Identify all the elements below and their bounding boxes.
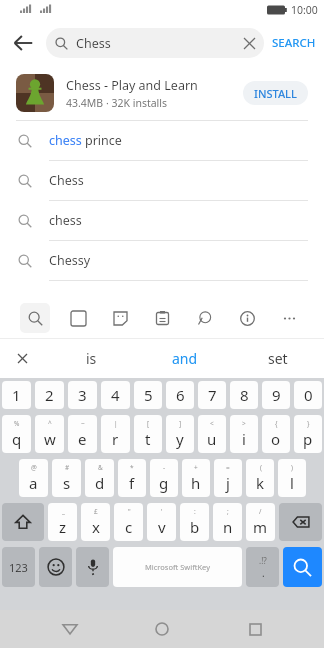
button[interactable]: 8 <box>230 381 258 409</box>
staticText: Chessy <box>49 252 91 269</box>
button[interactable]: ^ <box>35 415 64 453</box>
staticText: chess <box>49 212 82 229</box>
button[interactable]: chess prince <box>0 121 324 160</box>
staticText: Chess <box>49 172 84 189</box>
staticText: is <box>86 349 97 368</box>
button[interactable]: ~ <box>68 415 97 453</box>
staticText: * <box>130 463 134 472</box>
button[interactable]: / <box>246 503 275 541</box>
button[interactable]: @ <box>19 459 48 497</box>
button[interactable]: Search <box>20 303 50 333</box>
button[interactable]: & <box>85 459 114 497</box>
staticText: o <box>271 429 281 449</box>
button[interactable]: Chess <box>0 161 324 200</box>
staticText: { <box>275 419 278 428</box>
button[interactable]: Recents <box>232 610 278 648</box>
staticText: t <box>145 429 151 449</box>
button[interactable]: : <box>180 503 209 541</box>
button[interactable]: £ <box>81 503 110 541</box>
staticText: # <box>65 463 70 472</box>
button[interactable]: > <box>230 415 258 453</box>
button[interactable]: chess <box>0 201 324 240</box>
button[interactable]: Stickers <box>105 303 135 333</box>
button[interactable]: 123 <box>2 547 35 587</box>
button[interactable]: SEARCH <box>264 20 324 66</box>
button[interactable]: 2 <box>35 381 64 409</box>
staticText: _ <box>62 507 65 516</box>
button[interactable]: 4 <box>101 381 130 409</box>
staticText: ] <box>179 419 182 428</box>
button[interactable]: < <box>198 415 226 453</box>
button[interactable]: Chess <box>46 28 264 58</box>
button[interactable]: Chessy <box>0 241 324 280</box>
button[interactable]: Info <box>232 303 262 333</box>
button[interactable]: ' <box>147 503 176 541</box>
button[interactable]: ) <box>278 459 306 497</box>
staticText: | <box>114 419 118 428</box>
staticText: > <box>242 419 246 428</box>
button[interactable]: ] <box>166 415 194 453</box>
staticText: g <box>159 473 169 493</box>
button[interactable]: - <box>150 459 178 497</box>
button[interactable]: Clipboard <box>147 303 177 333</box>
button[interactable]: } <box>294 415 322 453</box>
button[interactable]: * <box>118 459 146 497</box>
staticText: q <box>12 429 22 449</box>
button[interactable]: 1 <box>2 381 31 409</box>
staticText: 7 <box>208 385 217 405</box>
button[interactable]: Microsoft SwiftKey <box>113 547 242 587</box>
button[interactable]: .!? <box>246 547 279 587</box>
staticText: £ <box>94 507 98 516</box>
button[interactable]: # <box>52 459 81 497</box>
button[interactable]: is <box>44 339 138 378</box>
staticText: y <box>176 429 184 449</box>
button[interactable]: 3 <box>68 381 97 409</box>
button[interactable]: Home <box>139 610 185 648</box>
staticText: Chess <box>76 35 236 52</box>
staticText: set <box>268 349 288 368</box>
button[interactable]: 7 <box>198 381 226 409</box>
button[interactable]: ( <box>246 459 274 497</box>
button[interactable]: Emoji <box>39 547 72 587</box>
button[interactable]: Clear <box>236 30 262 56</box>
button[interactable]: 5 <box>134 381 162 409</box>
button[interactable]: { <box>262 415 290 453</box>
staticText: ) <box>291 463 293 472</box>
button[interactable]: Back <box>47 610 93 648</box>
button[interactable]: + <box>182 459 210 497</box>
button[interactable]: 9 <box>262 381 290 409</box>
button[interactable]: Chess - Play and Learn <box>0 66 324 120</box>
button[interactable]: ; <box>213 503 242 541</box>
staticText: 6 <box>176 385 185 405</box>
button[interactable]: Translate <box>189 303 219 333</box>
button[interactable]: INSTALL <box>243 81 308 105</box>
button[interactable]: 0 <box>294 381 322 409</box>
button[interactable]: | <box>101 415 130 453</box>
staticText: p <box>303 429 313 449</box>
staticText: 0 <box>304 385 313 405</box>
staticText: 5 <box>144 385 153 405</box>
button[interactable]: Search <box>283 547 322 587</box>
staticText: < <box>210 419 214 428</box>
button[interactable]: and <box>138 339 231 378</box>
staticText: 123 <box>9 560 28 575</box>
button[interactable]: 6 <box>166 381 194 409</box>
button[interactable]: Backspace <box>279 503 322 541</box>
button[interactable]: % <box>2 415 31 453</box>
button[interactable]: Close <box>0 339 44 378</box>
button[interactable]: Voice input <box>76 547 109 587</box>
staticText: e <box>78 429 87 449</box>
button[interactable]: = <box>214 459 242 497</box>
staticText: 8 <box>240 385 249 405</box>
button[interactable]: " <box>114 503 143 541</box>
staticText: x <box>92 517 100 537</box>
button[interactable]: Back <box>0 20 46 66</box>
button[interactable]: Shift <box>2 503 44 541</box>
staticText: + <box>194 463 198 472</box>
staticText: / <box>259 507 262 516</box>
button[interactable]: set <box>231 339 324 378</box>
button[interactable]: GIF <box>63 303 93 333</box>
button[interactable]: [ <box>134 415 162 453</box>
button[interactable]: _ <box>48 503 77 541</box>
button[interactable]: More <box>274 303 304 333</box>
